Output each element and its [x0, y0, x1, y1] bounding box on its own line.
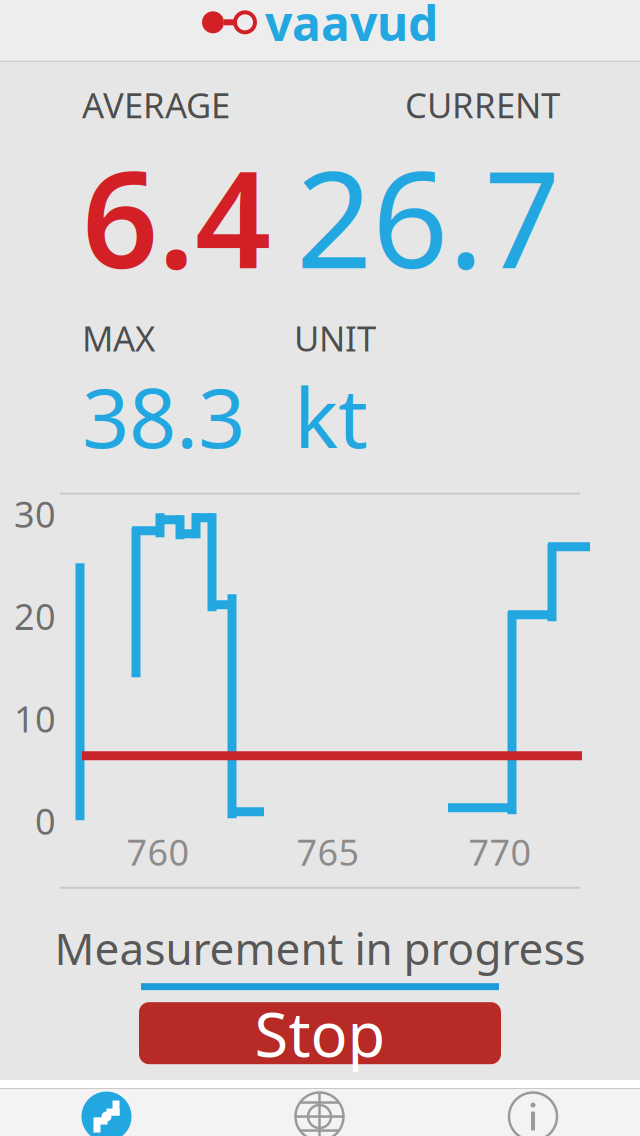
staticText: 30	[14, 490, 56, 538]
staticText: MAX	[82, 315, 155, 361]
staticText: UNIT	[294, 315, 376, 361]
staticText: Stop	[254, 992, 385, 1074]
button[interactable]: Stop	[139, 1002, 501, 1064]
staticText: AVERAGE	[82, 82, 230, 128]
staticText: vaavud	[265, 0, 438, 54]
staticText: 6.4	[82, 128, 271, 305]
staticText: 10	[14, 694, 56, 742]
staticText: kt	[294, 361, 368, 471]
staticText: 0	[35, 797, 56, 845]
staticText: 38.3	[82, 361, 245, 471]
staticText: Measurement in progress	[54, 919, 585, 977]
staticText: 770	[468, 828, 531, 876]
button[interactable]: Map	[213, 1089, 426, 1136]
staticText: 26.7	[296, 128, 560, 305]
staticText: 760	[126, 828, 189, 876]
staticText: 20	[14, 592, 56, 640]
staticText: 765	[296, 828, 359, 876]
button[interactable]: About	[426, 1089, 640, 1136]
staticText: CURRENT	[405, 82, 560, 128]
button[interactable]: Measure	[0, 1089, 213, 1136]
